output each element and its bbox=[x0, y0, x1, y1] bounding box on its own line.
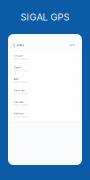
staticText: Trip duration bbox=[14, 113, 24, 115]
staticText: 2024-05-20 11:04 bbox=[14, 58, 28, 60]
staticText: Power lost bbox=[14, 66, 22, 69]
staticText: Add bbox=[69, 44, 75, 47]
staticText: Tow start alert bbox=[14, 90, 26, 92]
staticText: Overspeed bbox=[14, 55, 23, 57]
staticText: 2024-05-20 09:12 bbox=[14, 116, 28, 118]
staticText: 2024-05-20 10:52 bbox=[14, 70, 28, 72]
staticText: 2024-05-20 10:31 bbox=[14, 81, 28, 83]
staticText: Alerts bbox=[16, 44, 23, 47]
button[interactable]: Overspeed bbox=[8, 52, 82, 63]
staticText: Tow stop alert bbox=[14, 101, 25, 103]
staticText: Idle Alert bbox=[14, 78, 20, 80]
button[interactable]: Trip duration bbox=[8, 110, 82, 121]
button[interactable]: Power lost bbox=[8, 63, 82, 75]
button[interactable]: Add bbox=[69, 36, 82, 50]
staticText: 2024-05-20 09:58 bbox=[14, 93, 28, 95]
staticText: 2024-05-20 09:41 bbox=[14, 105, 28, 106]
button[interactable]: Alerts bbox=[8, 36, 26, 50]
button[interactable]: Idle Alert bbox=[8, 75, 82, 87]
button[interactable]: Tow start alert bbox=[8, 87, 82, 98]
button[interactable]: Tow stop alert bbox=[8, 98, 82, 110]
staticText: SIGAL GPS bbox=[20, 11, 69, 23]
